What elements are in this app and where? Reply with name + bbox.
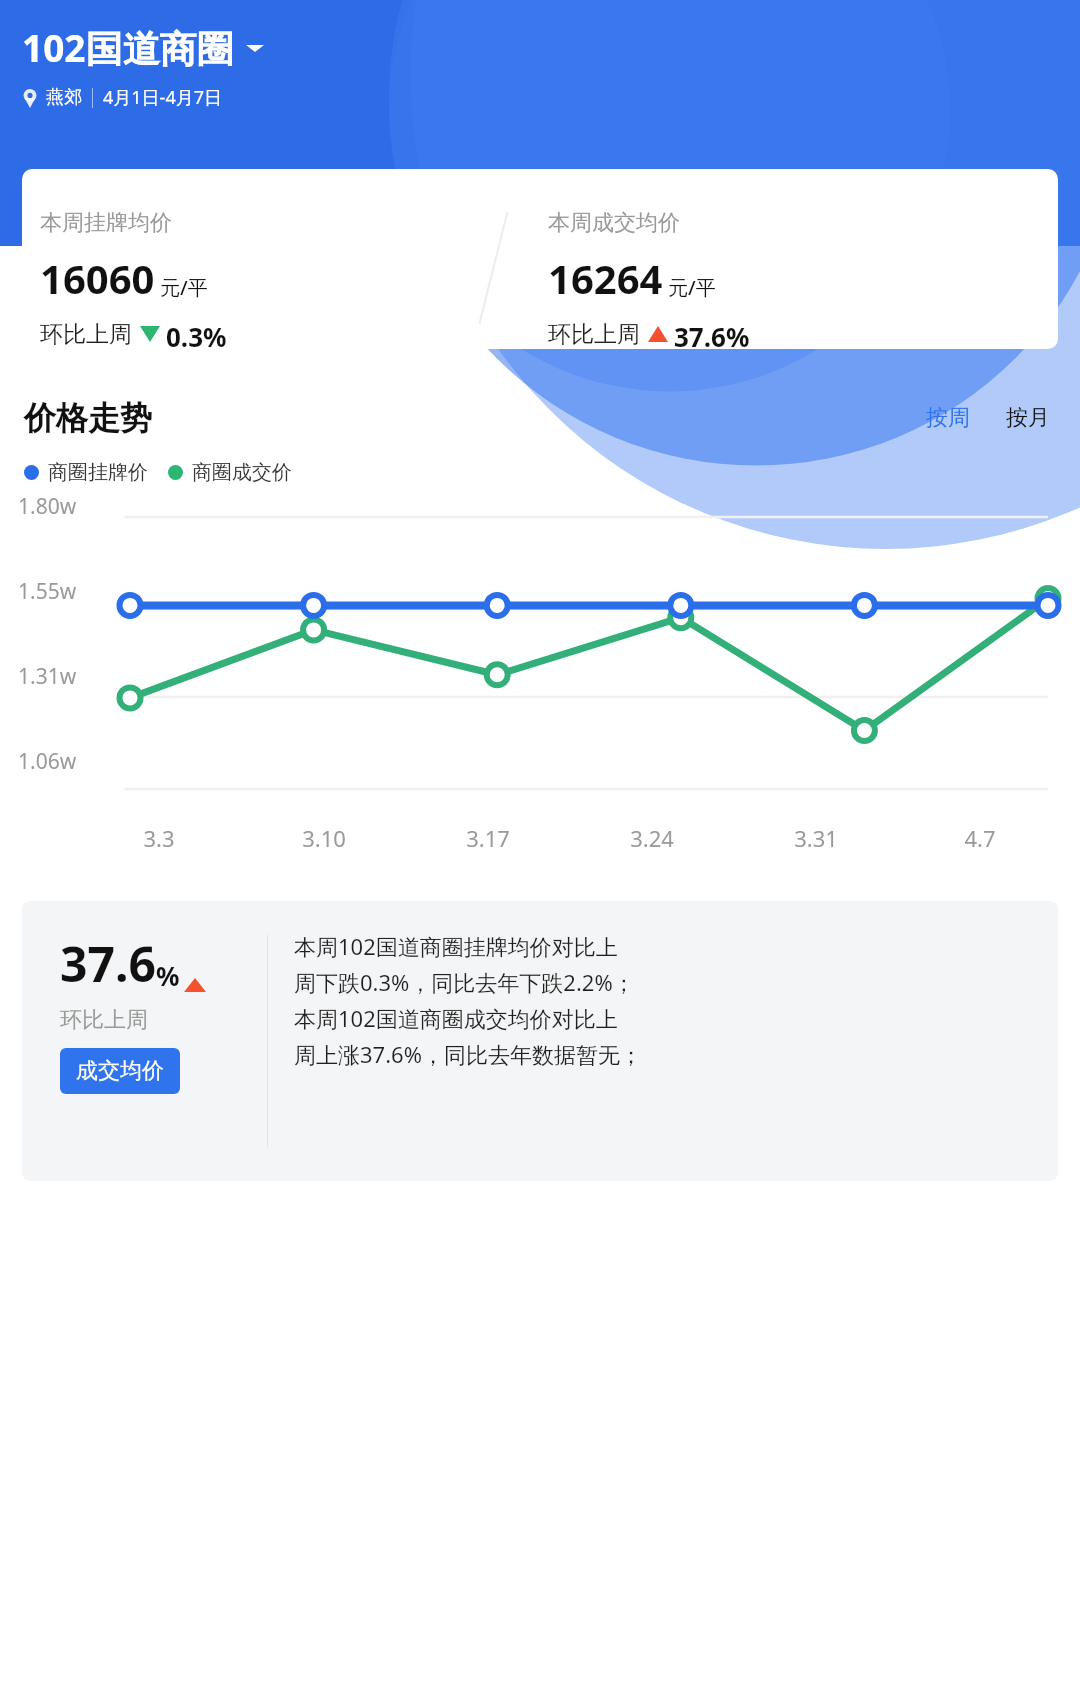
staticText: 元/平 [668,274,716,301]
staticText: 周下跌0.3%，同比去年下跌2.2%； [294,967,635,997]
staticText: 成交均价 [76,1057,164,1085]
staticText: 37.6% [674,319,750,349]
staticText: 3.24 [630,823,674,853]
staticText: 按周 [926,404,970,432]
staticText: 价格走势 [24,398,152,438]
staticText: 本周102国道商圈成交均价对比上 [294,1003,618,1033]
staticText: 3.3 [143,823,175,853]
button[interactable]: 37.6 [22,901,1058,1181]
staticText: 环比上周 [60,1006,148,1034]
staticText: 1.31w [18,662,118,691]
button[interactable]: 本周挂牌均价 [40,169,540,349]
staticText: 4.7 [964,823,996,853]
staticText: % [156,958,180,993]
staticText: 102国道商圈 [22,22,234,73]
staticText: 环比上周 [548,320,640,349]
button[interactable]: 成交均价 [60,1048,180,1094]
staticText: 37.6 [60,931,156,996]
button[interactable]: 本周挂牌均价 [22,169,1058,349]
staticText: 本周成交均价 [548,209,680,237]
staticText: 16264 [548,251,663,305]
staticText: 3.17 [466,823,510,853]
button[interactable]: 按周 [920,398,976,438]
staticText: 4月1日-4月7日 [103,85,222,110]
staticText: 1.80w [18,492,118,521]
staticText: 周上涨37.6%，同比去年数据暂无； [294,1039,642,1069]
staticText: 3.31 [794,823,838,853]
staticText: 3.10 [302,823,346,853]
button[interactable]: 102国道商圈 [22,22,272,73]
staticText: 商圈挂牌价 [48,460,148,485]
staticText: 1.55w [18,577,118,606]
staticText: 16060 [40,251,155,305]
staticText: 燕郊 [46,86,82,109]
staticText: 商圈成交价 [192,460,292,485]
staticText: 1.06w [18,747,118,776]
staticText: 本周挂牌均价 [40,209,172,237]
staticText: 本周102国道商圈挂牌均价对比上 [294,931,618,961]
staticText: 按月 [1006,404,1050,432]
staticText: 元/平 [160,274,208,301]
staticText: 环比上周 [40,320,132,349]
staticText: 0.3% [166,319,227,349]
button[interactable]: 按月 [1000,398,1056,438]
button[interactable]: 本周成交均价 [548,169,1058,349]
